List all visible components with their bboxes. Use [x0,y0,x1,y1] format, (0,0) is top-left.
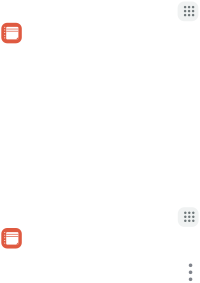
button[interactable]: Apps [178,207,199,227]
button[interactable]: Apps [178,1,198,21]
button[interactable]: Notebook [1,228,22,248]
button[interactable]: Notebook [1,23,22,43]
button[interactable]: More options [189,263,192,281]
